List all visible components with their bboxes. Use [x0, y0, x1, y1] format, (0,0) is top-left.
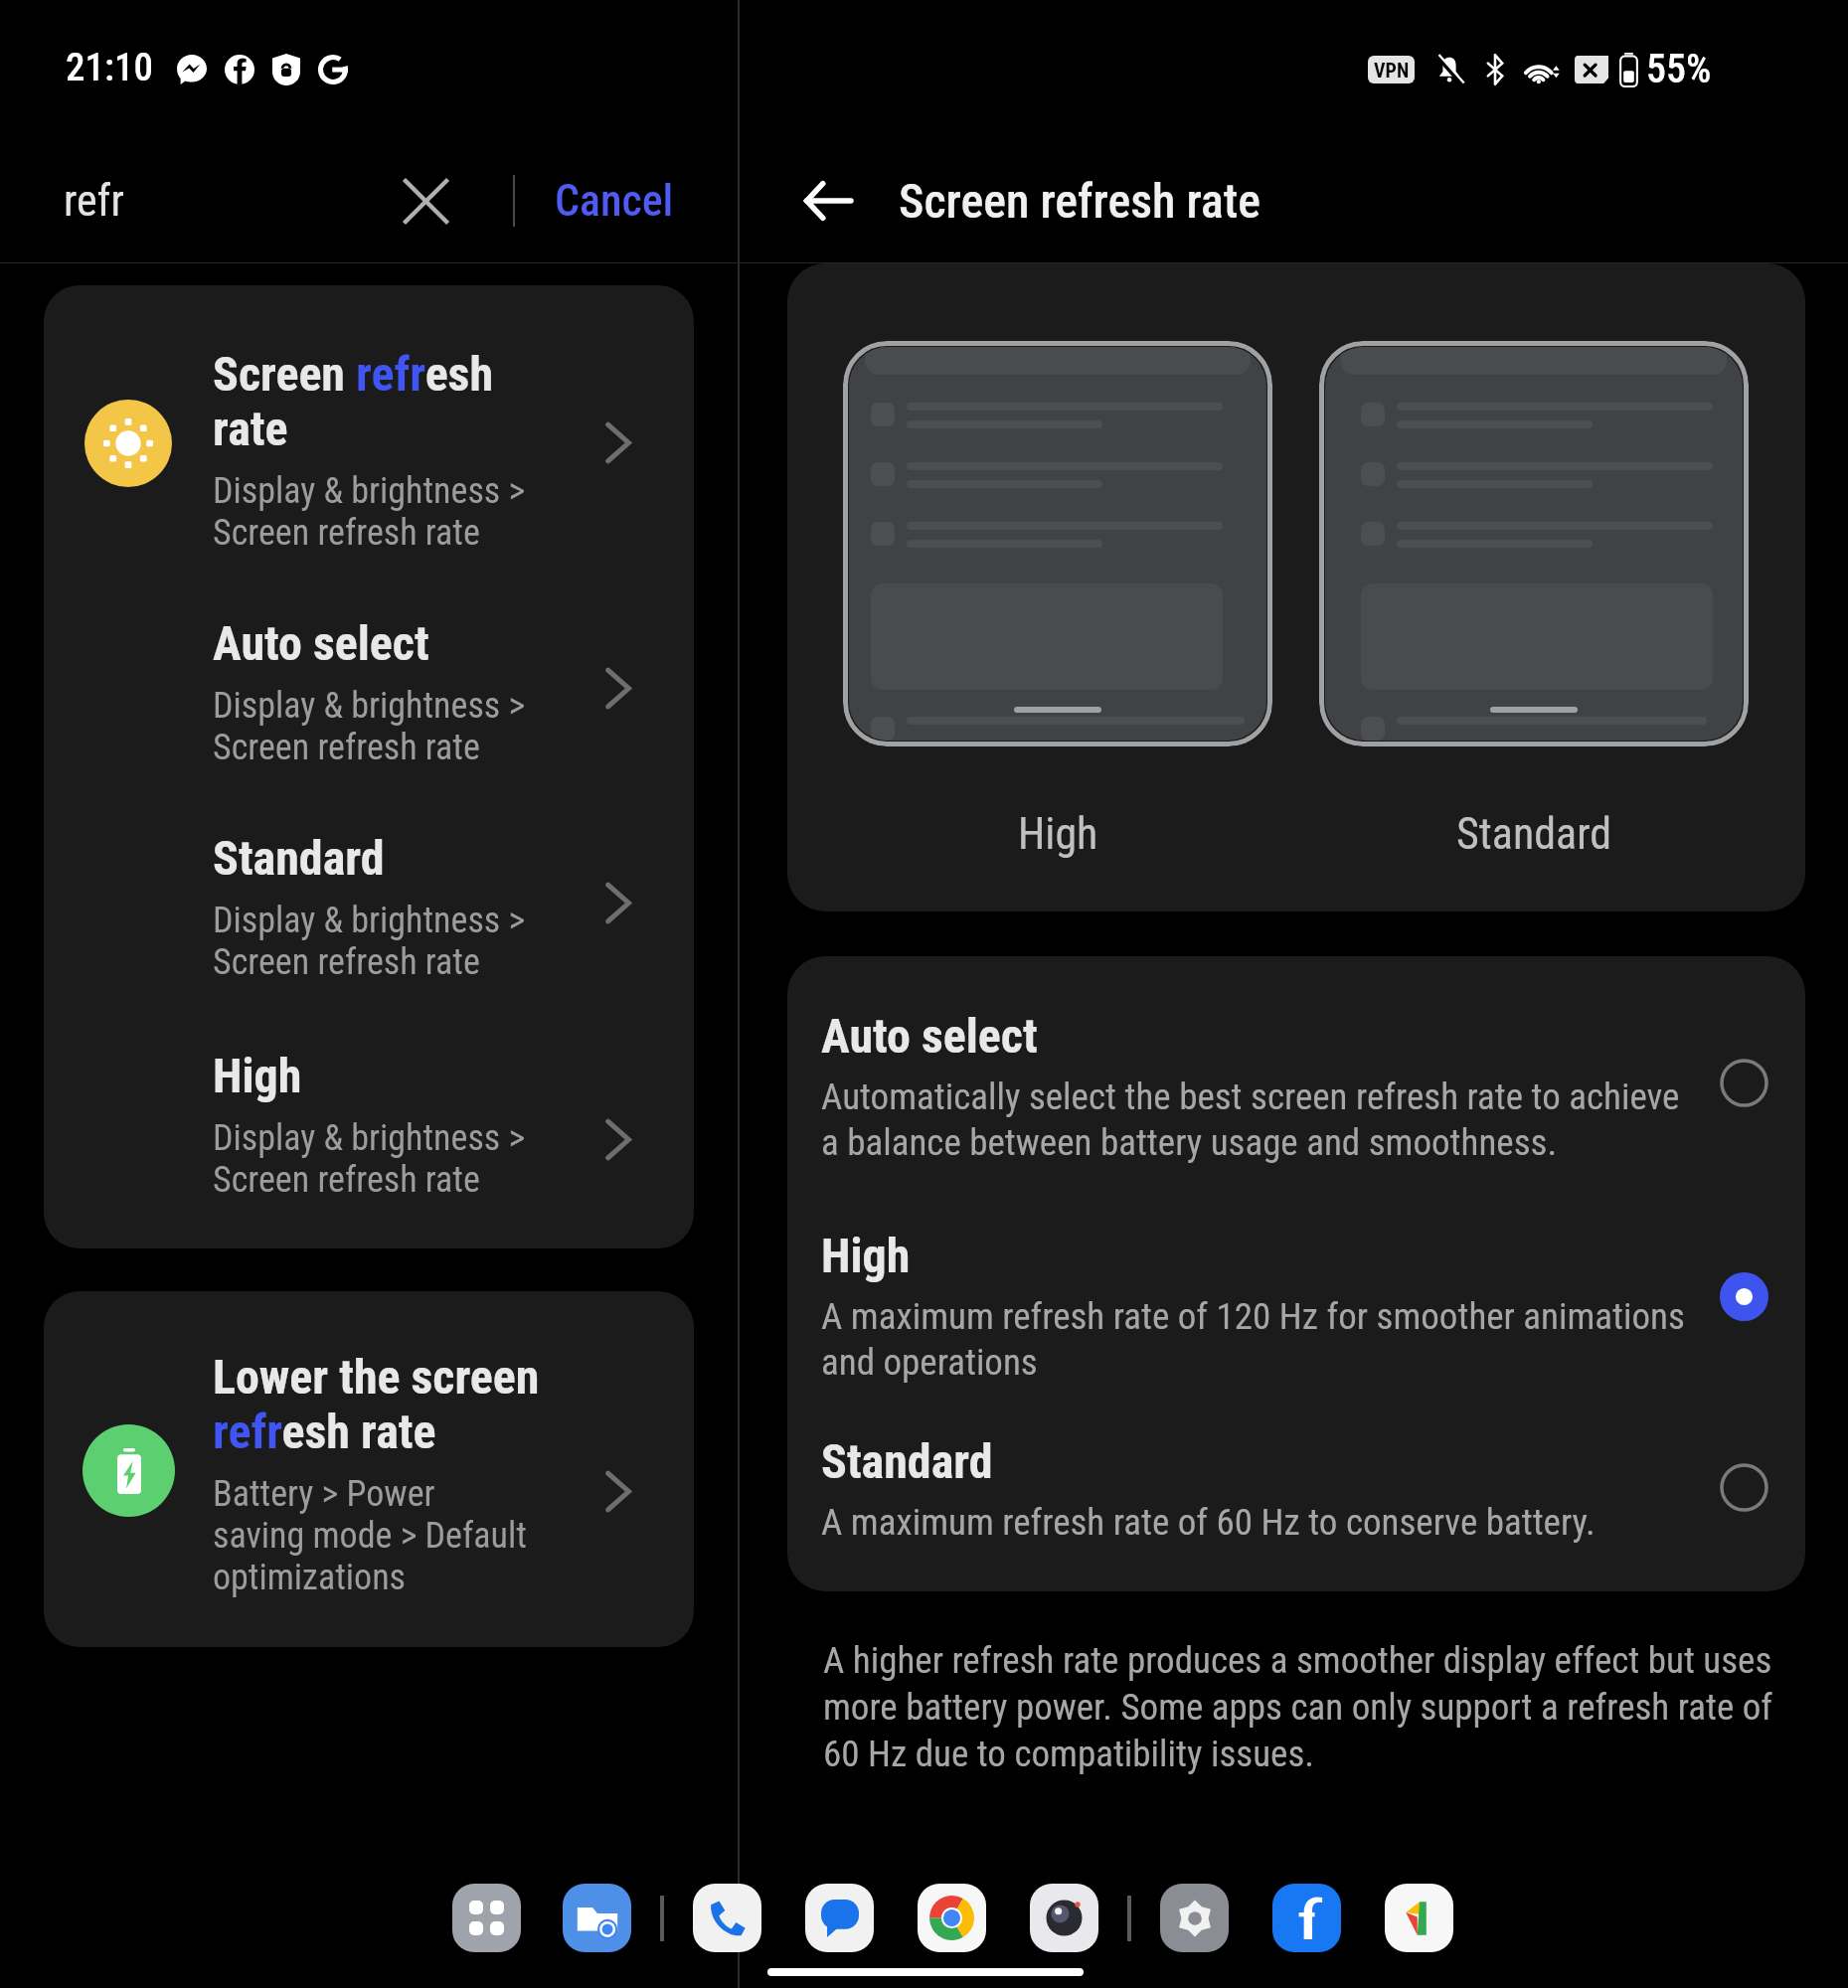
button[interactable]: Auto select [1702, 1041, 1785, 1124]
button[interactable]: High [787, 1228, 1805, 1384]
button[interactable]: Google One [1385, 1884, 1453, 1952]
button[interactable]: Screen refresh rate [44, 285, 694, 561]
staticText: Display & brightness > Screen refresh ra… [213, 1117, 526, 1201]
staticText: Screen refresh rate [899, 173, 1260, 229]
staticText: VPN [1374, 59, 1410, 82]
staticText: Display & brightness > Screen refresh ra… [213, 470, 526, 554]
button[interactable]: Camera [1030, 1884, 1098, 1952]
staticText: A maximum refresh rate of 60 Hz to conse… [821, 1501, 1596, 1544]
staticText: 21:10 [66, 45, 153, 90]
staticText: Display & brightness > Screen refresh ra… [213, 900, 526, 983]
button[interactable]: Lower the screen refresh rate [44, 1291, 694, 1647]
staticText: Auto select [821, 1008, 1038, 1064]
button[interactable]: High [44, 991, 694, 1248]
button[interactable]: Files [563, 1884, 631, 1952]
staticText: Auto select [213, 615, 429, 671]
staticText: Lower the screen refresh rate [213, 1349, 540, 1459]
staticText: A maximum refresh rate of 120 Hz for smo… [821, 1295, 1685, 1384]
staticText: A higher refresh rate produces a smoothe… [823, 1639, 1773, 1775]
button[interactable]: Standard [787, 1433, 1805, 1544]
button[interactable]: Auto select [44, 561, 694, 775]
staticText: High [1018, 808, 1098, 860]
button[interactable]: Facebook [1272, 1884, 1341, 1952]
button[interactable]: Cancel [543, 161, 686, 241]
staticText: Standard [1456, 808, 1611, 860]
staticText: Standard [821, 1433, 993, 1489]
staticText: High [213, 1048, 302, 1103]
staticText: Cancel [555, 175, 674, 227]
button[interactable]: Auto select [787, 1008, 1805, 1164]
staticText: Screen refresh rate [213, 346, 494, 456]
staticText: Display & brightness > Screen refresh ra… [213, 685, 526, 768]
button[interactable]: Back [783, 157, 871, 245]
button[interactable]: Settings [1160, 1884, 1229, 1952]
button[interactable]: Chrome [918, 1884, 986, 1952]
staticText: Standard [213, 830, 385, 886]
button[interactable]: Phone [693, 1884, 761, 1952]
staticText: Battery > Power saving mode > Default op… [213, 1473, 527, 1598]
button[interactable]: All apps [452, 1884, 521, 1952]
button[interactable]: Standard [1702, 1445, 1785, 1529]
button[interactable]: Clear search [384, 159, 467, 243]
staticText: High [821, 1228, 911, 1283]
staticText: Automatically select the best screen ref… [821, 1076, 1680, 1164]
button[interactable]: High [1702, 1254, 1785, 1338]
staticText: 55% [1646, 46, 1712, 92]
staticText: refr [64, 175, 124, 227]
button[interactable]: Standard [44, 775, 694, 991]
button[interactable]: Messages [805, 1884, 874, 1952]
